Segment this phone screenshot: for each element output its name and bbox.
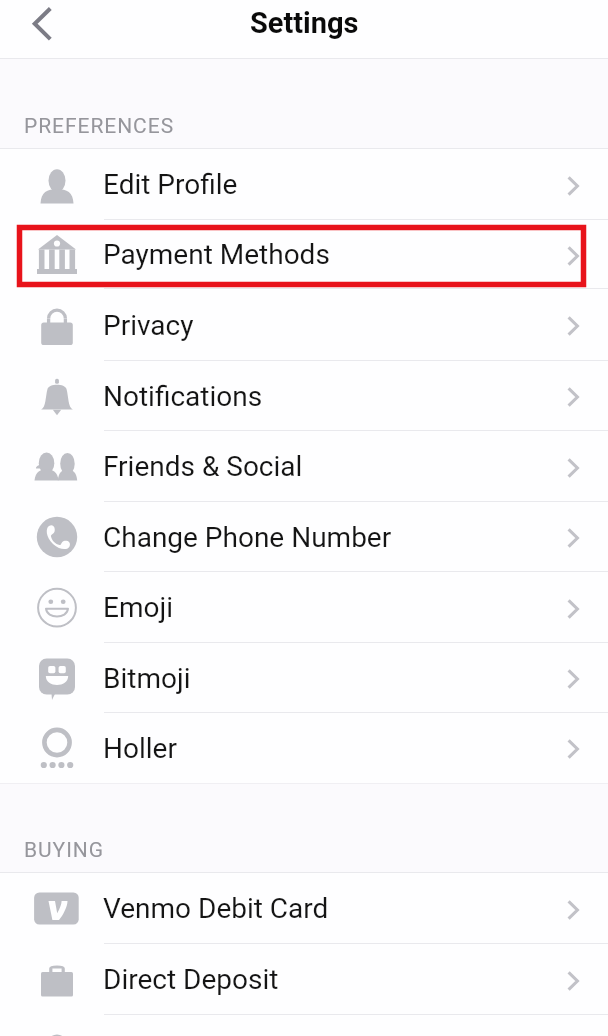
button[interactable]: Holler <box>0 713 608 783</box>
button[interactable]: Friends & Social <box>0 431 608 502</box>
staticText: Change Phone Number <box>103 521 392 554</box>
staticText: Privacy <box>103 309 194 342</box>
button[interactable]: Edit Profile <box>0 149 608 220</box>
button[interactable]: Back <box>8 0 66 58</box>
staticText: Notifications <box>103 380 263 413</box>
staticText: PREFERENCES <box>24 114 175 139</box>
button[interactable]: Notifications <box>0 361 608 431</box>
staticText: BUYING <box>24 838 105 863</box>
staticText: Edit Profile <box>103 168 238 201</box>
staticText: Payment Methods <box>103 238 330 271</box>
button[interactable]: Direct Deposit <box>0 944 608 1015</box>
staticText: Settings <box>250 6 359 40</box>
button[interactable]: Venmo Debit Card <box>0 873 608 944</box>
staticText: Emoji <box>103 591 173 624</box>
button[interactable]: Privacy <box>0 289 608 361</box>
staticText: Holler <box>103 732 177 765</box>
button[interactable]: Change Phone Number <box>0 502 608 572</box>
staticText: Venmo Debit Card <box>103 892 329 925</box>
button[interactable]: Payment Methods <box>0 220 608 289</box>
staticText: Bitmoji <box>103 662 191 695</box>
button[interactable]: Bitmoji <box>0 643 608 713</box>
staticText: Friends & Social <box>103 450 303 483</box>
staticText: Direct Deposit <box>103 963 279 996</box>
button[interactable]: Emoji <box>0 572 608 643</box>
